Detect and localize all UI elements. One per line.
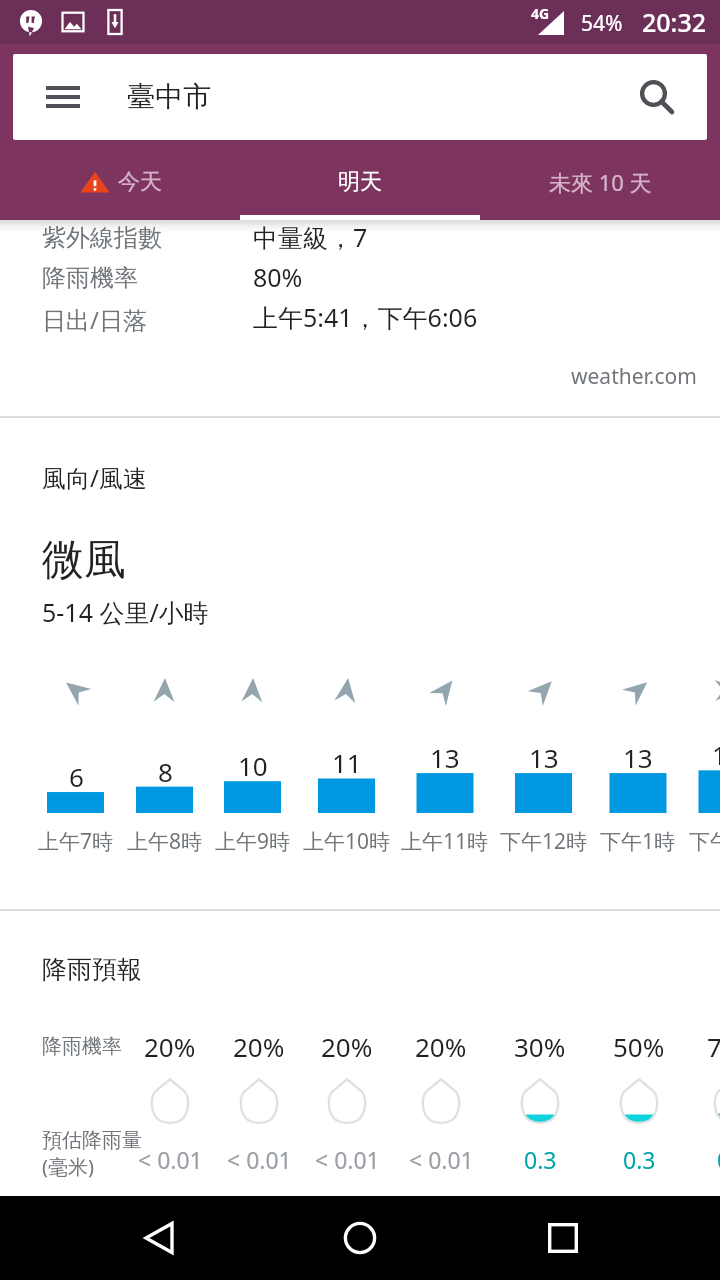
staticText: 上午10時 bbox=[303, 827, 391, 856]
staticText: < 0.01 bbox=[315, 1144, 380, 1175]
staticText: 降雨機率 bbox=[42, 263, 138, 293]
staticText: 10 bbox=[238, 748, 268, 783]
staticText: 8 bbox=[158, 754, 173, 789]
staticText: 紫外線指數 bbox=[42, 223, 162, 253]
staticText: 上午5:41，下午6:06 bbox=[253, 300, 478, 334]
staticText: 30% bbox=[514, 1029, 566, 1064]
staticText: 臺中市 bbox=[127, 79, 211, 114]
staticText: 降雨預報 bbox=[42, 954, 142, 985]
staticText: 下午2時 bbox=[689, 827, 720, 856]
staticText: 80% bbox=[253, 260, 303, 294]
staticText: 20% bbox=[321, 1029, 373, 1064]
staticText: 降雨機率 bbox=[42, 1034, 122, 1059]
staticText: 20% bbox=[233, 1029, 285, 1064]
staticText: 54% bbox=[581, 9, 623, 38]
staticText: 日出/日落 bbox=[42, 303, 147, 336]
staticText: 5-14 公里/小時 bbox=[42, 595, 209, 629]
staticText: (毫米) bbox=[42, 1153, 94, 1180]
staticText: 20:32 bbox=[642, 5, 707, 39]
staticText: 70% bbox=[707, 1029, 720, 1064]
staticText: 0.3 bbox=[524, 1144, 557, 1175]
staticText: < 0.01 bbox=[227, 1144, 292, 1175]
staticText: 風向/風速 bbox=[42, 461, 147, 494]
button[interactable]: 今天 bbox=[0, 145, 240, 220]
staticText: < 0.01 bbox=[409, 1144, 474, 1175]
button[interactable]: Menu bbox=[13, 54, 113, 140]
staticText: 0.5 bbox=[717, 1144, 720, 1175]
staticText: 中量級，7 bbox=[253, 220, 368, 254]
staticText: 20% bbox=[415, 1029, 467, 1064]
staticText: 未來 10 天 bbox=[549, 167, 652, 197]
button[interactable]: 紫外線指數 bbox=[0, 223, 720, 263]
staticText: 上午7時 bbox=[38, 827, 114, 856]
staticText: 13 bbox=[529, 740, 559, 775]
button[interactable]: Back bbox=[99, 1196, 219, 1280]
staticText: 下午12時 bbox=[500, 827, 588, 856]
staticText: 13 bbox=[623, 740, 653, 775]
staticText: 6 bbox=[69, 759, 84, 794]
staticText: weather.com bbox=[571, 362, 697, 391]
staticText: 微風 bbox=[42, 534, 126, 587]
staticText: 上午8時 bbox=[127, 827, 203, 856]
staticText: 明天 bbox=[338, 168, 382, 196]
staticText: 14 bbox=[712, 737, 720, 772]
staticText: 50% bbox=[613, 1029, 665, 1064]
staticText: 20% bbox=[144, 1029, 196, 1064]
button[interactable]: 未來 10 天 bbox=[480, 145, 720, 220]
button[interactable]: 明天 bbox=[240, 145, 480, 220]
staticText: 上午9時 bbox=[215, 827, 291, 856]
staticText: 0.3 bbox=[623, 1144, 656, 1175]
button[interactable]: Search bbox=[615, 54, 699, 140]
staticText: 上午11時 bbox=[401, 827, 489, 856]
button[interactable]: Menu bbox=[13, 54, 707, 140]
staticText: 13 bbox=[430, 740, 460, 775]
button[interactable]: 日出/日落 bbox=[0, 303, 720, 343]
staticText: 4G bbox=[531, 4, 550, 23]
staticText: 預估降雨量 bbox=[42, 1128, 142, 1153]
staticText: 下午1時 bbox=[600, 827, 676, 856]
button[interactable]: Home bbox=[300, 1196, 420, 1280]
staticText: 今天 bbox=[118, 168, 162, 196]
button[interactable]: 降雨機率 bbox=[0, 263, 720, 303]
staticText: < 0.01 bbox=[138, 1144, 203, 1175]
button[interactable]: Recents bbox=[503, 1196, 623, 1280]
staticText: 11 bbox=[332, 745, 362, 780]
